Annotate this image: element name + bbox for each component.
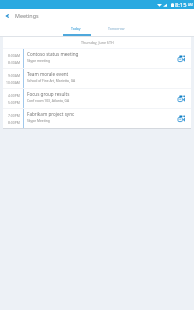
staticText: 9:00AM — [8, 73, 20, 78]
staticText: Tomorrow — [108, 26, 125, 31]
staticText: 8:15 — [175, 1, 187, 9]
staticText: 5:00PM — [8, 100, 20, 105]
staticText: Meetings — [15, 12, 39, 19]
staticText: Today — [71, 26, 81, 31]
staticText: Thursday, June 6TH — [81, 40, 114, 45]
staticText: Focus group results — [27, 91, 70, 97]
button[interactable]: 8:00AM — [3, 49, 191, 68]
staticText: Team morale event — [27, 71, 69, 77]
staticText: School of Fine Art, Marietta, GA — [27, 78, 76, 82]
staticText: Contoso status meeting — [27, 51, 79, 57]
staticText: 8:00PM — [8, 120, 20, 125]
button[interactable]: Today — [61, 22, 90, 34]
staticText: Conf room 103, Atlanta, GA — [27, 98, 70, 102]
button[interactable]: Join Skype meeting — [176, 53, 187, 64]
staticText: AM — [188, 3, 193, 7]
staticText: 10:00AM — [6, 80, 20, 85]
staticText: Fabrikam project sync — [27, 111, 75, 117]
staticText: 8:30AM — [8, 60, 20, 65]
staticText: 8:00AM — [8, 53, 20, 58]
button[interactable]: Tomorrow — [102, 22, 131, 34]
staticText: Skype meeting — [27, 58, 50, 62]
button[interactable]: 7:00PM — [3, 109, 191, 128]
button[interactable]: 4:00PM — [3, 89, 191, 108]
button[interactable]: Join Skype meeting — [176, 93, 187, 104]
button[interactable]: Join Skype meeting — [176, 113, 187, 124]
staticText: 4:00PM — [8, 93, 20, 98]
button[interactable]: 9:00AM — [3, 69, 191, 88]
staticText: Skype Meeting — [27, 118, 50, 122]
staticText: 7:00PM — [8, 113, 20, 118]
button[interactable]: Back — [0, 9, 15, 22]
